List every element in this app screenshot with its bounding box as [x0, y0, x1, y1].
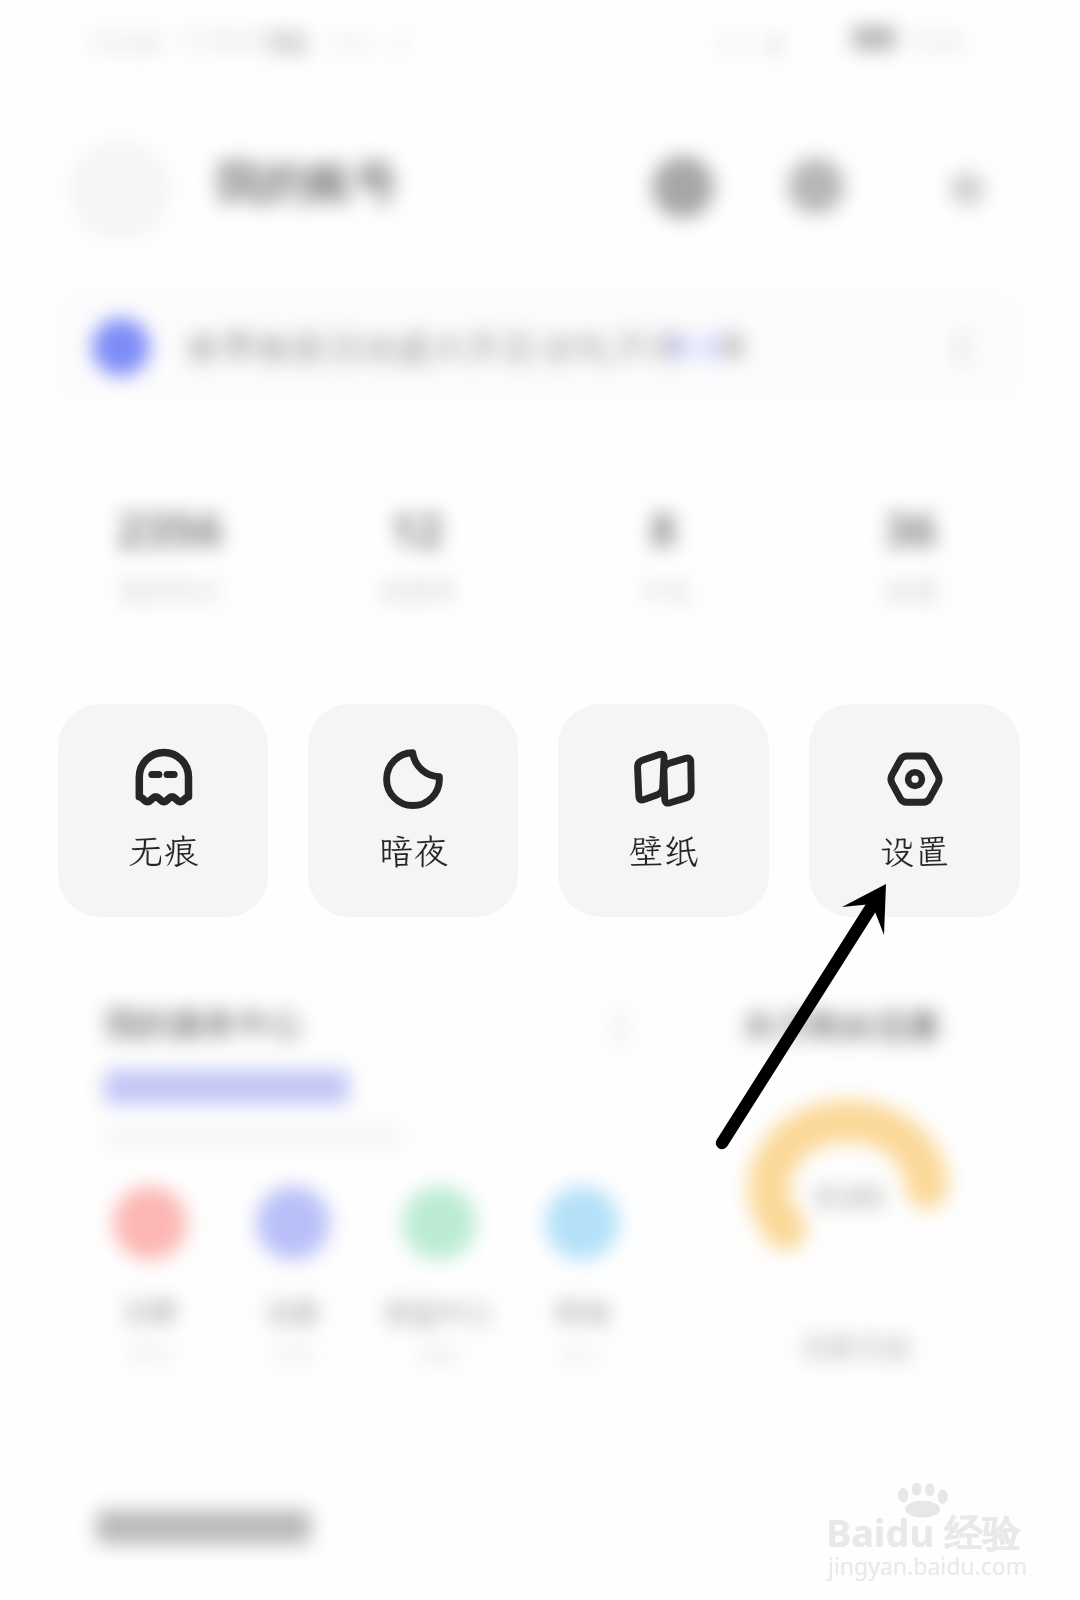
staticText: 12	[390, 498, 443, 561]
staticText: 设置	[879, 828, 950, 874]
staticText: 5G	[268, 20, 310, 64]
staticText: 话费	[123, 1296, 177, 1330]
staticText: 查看	[665, 329, 725, 367]
staticText: 流量	[266, 1296, 320, 1330]
staticText: 8.6G	[816, 1174, 885, 1218]
staticText: jingyan.baidu.com	[828, 1550, 1028, 1581]
staticText: 权益中心	[385, 1296, 493, 1330]
staticText: 中国移动	[178, 22, 298, 60]
staticText: 8	[650, 498, 677, 561]
staticText: 无痕	[128, 828, 199, 874]
staticText: 暗夜	[378, 828, 449, 874]
staticText: 流量充值	[800, 1330, 912, 1365]
button[interactable]: Settings	[809, 704, 1020, 917]
staticText: 2356	[117, 498, 223, 561]
staticText: 36	[884, 498, 937, 561]
staticText: 春季焕新活动盛大开启 好礼不停	[186, 323, 686, 371]
staticText: 商城	[555, 1296, 609, 1330]
staticText: 本月剩余流量	[742, 1006, 940, 1048]
button[interactable]: Incognito	[58, 704, 268, 917]
staticText: 我的服务中心	[104, 1004, 302, 1046]
staticText: 我的账号	[214, 155, 398, 213]
staticText: 壁纸	[628, 828, 699, 874]
staticText: Baidu 经验	[826, 1506, 1020, 1558]
button[interactable]: Dark mode	[308, 704, 518, 917]
button[interactable]: Wallpaper	[558, 704, 769, 917]
